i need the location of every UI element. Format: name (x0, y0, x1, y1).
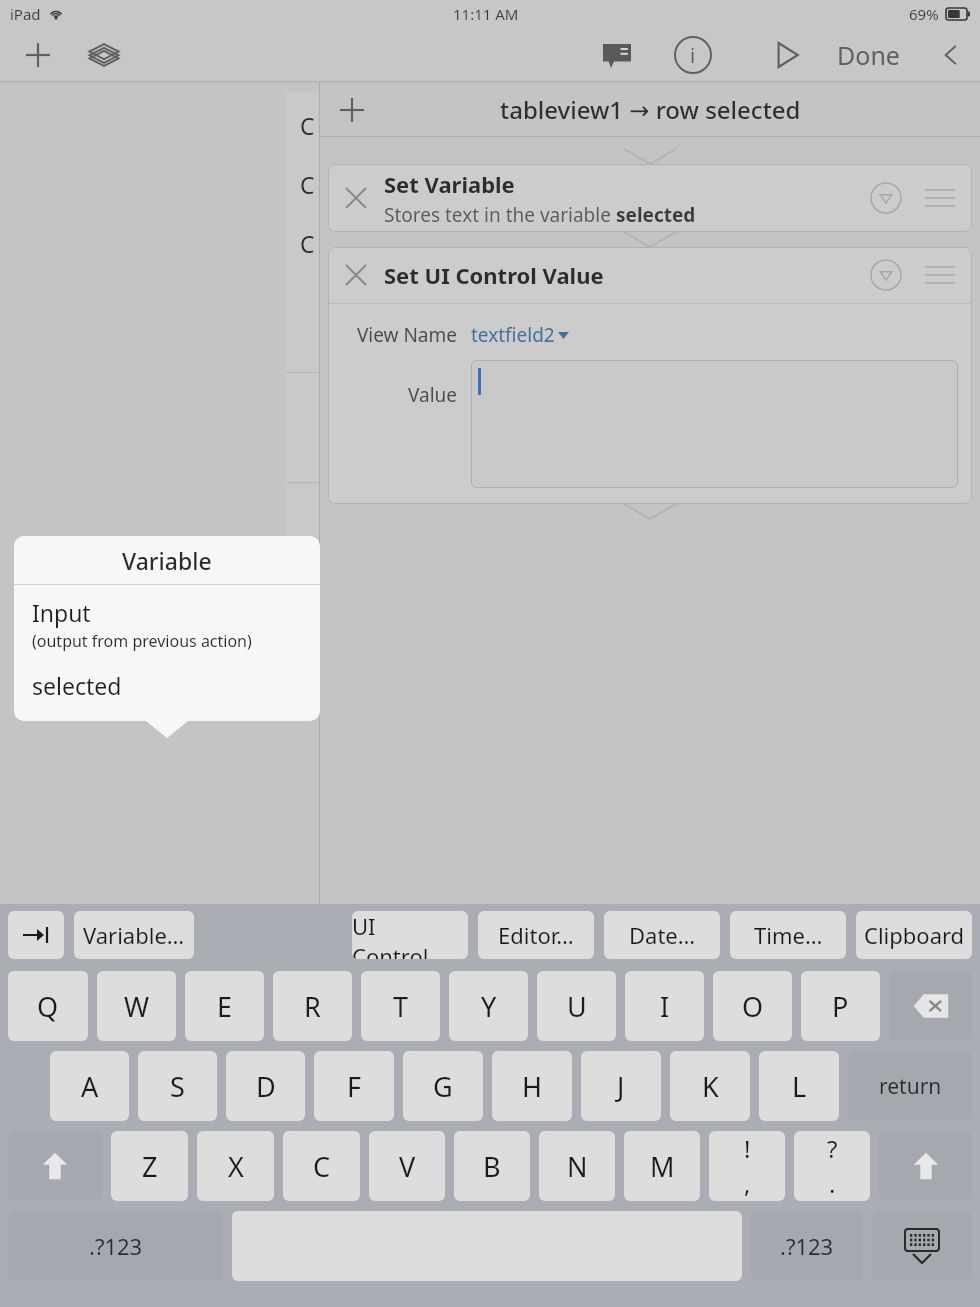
staticText: Editor… (498, 920, 574, 950)
button[interactable]: A (50, 1051, 129, 1121)
button[interactable]: Add (14, 31, 62, 79)
button[interactable]: P (801, 971, 880, 1041)
button[interactable]: ! (709, 1131, 785, 1201)
button[interactable]: G (403, 1051, 483, 1121)
staticText: O (742, 988, 764, 1025)
staticText: C (300, 169, 315, 200)
button[interactable]: L (759, 1051, 839, 1121)
button[interactable]: C (283, 1131, 360, 1201)
staticText: N (567, 1148, 588, 1185)
staticText: P (832, 988, 849, 1025)
staticText: E (217, 988, 233, 1025)
button[interactable]: UI Control… (352, 911, 468, 959)
button[interactable]: Delete action (328, 247, 384, 303)
button[interactable]: .?123 (751, 1211, 863, 1281)
staticText: I (660, 988, 670, 1025)
staticText: return (879, 1072, 942, 1101)
button[interactable]: H (492, 1051, 572, 1121)
button[interactable]: Y (449, 971, 528, 1041)
staticText: ! (744, 1132, 751, 1165)
button[interactable]: Input (14, 585, 320, 658)
button[interactable]: Reorder (914, 164, 966, 232)
button[interactable]: N (539, 1131, 615, 1201)
button[interactable]: Add action (330, 88, 374, 132)
button[interactable]: return (848, 1051, 972, 1121)
staticText: Value (342, 382, 457, 408)
button[interactable]: Editor… (478, 911, 594, 959)
button[interactable]: Delete action (328, 164, 384, 232)
staticText: Set UI Control Value (384, 260, 604, 290)
staticText: H (522, 1068, 543, 1105)
button[interactable]: Done (831, 29, 906, 81)
button[interactable]: Hide keyboard (872, 1211, 972, 1281)
staticText: . (829, 1167, 836, 1200)
staticText: selected (616, 202, 696, 228)
button[interactable]: U (537, 971, 616, 1041)
button[interactable]: Q (8, 971, 88, 1041)
button[interactable]: Time… (730, 911, 846, 959)
staticText: Variable… (83, 920, 185, 950)
button[interactable]: Run (761, 29, 813, 81)
staticText: Time… (754, 920, 823, 950)
button[interactable]: B (454, 1131, 530, 1201)
staticText: i (690, 42, 696, 69)
staticText: D (256, 1068, 276, 1105)
staticText: 11:11 AM (453, 4, 519, 24)
button[interactable]: K (670, 1051, 750, 1121)
button[interactable]: O (713, 971, 792, 1041)
staticText: textfield2 (471, 322, 555, 348)
staticText: tableview1 → row selected (500, 93, 801, 126)
button[interactable]: Reorder (914, 247, 966, 303)
button[interactable]: Date… (604, 911, 720, 959)
staticText: J (617, 1068, 625, 1105)
button[interactable]: ? (794, 1131, 870, 1201)
button[interactable]: Expand (858, 164, 914, 232)
button[interactable]: F (314, 1051, 394, 1121)
button[interactable]: Back (928, 32, 974, 78)
button[interactable]: J (581, 1051, 661, 1121)
button[interactable]: Expand (858, 247, 914, 303)
button[interactable]: Backspace (889, 971, 972, 1041)
button[interactable]: W (97, 971, 176, 1041)
staticText: S (170, 1068, 185, 1105)
staticText: F (347, 1068, 362, 1105)
staticText: A (81, 1068, 99, 1105)
button[interactable]: Shift (879, 1131, 972, 1201)
button[interactable]: Info (667, 29, 719, 81)
staticText: C (300, 228, 315, 259)
button[interactable]: V (369, 1131, 445, 1201)
button[interactable]: .?123 (8, 1211, 223, 1281)
staticText: Done (837, 38, 900, 72)
button[interactable]: Tab (8, 911, 64, 959)
staticText: Q (37, 988, 59, 1025)
staticText: .?123 (780, 1231, 834, 1261)
button[interactable]: Layers (80, 31, 128, 79)
staticText: View Name (342, 322, 457, 348)
staticText: (output from previous action) (32, 630, 252, 652)
button[interactable]: T (361, 971, 440, 1041)
button[interactable]: Console (591, 29, 643, 81)
button[interactable]: Delete action (328, 164, 972, 232)
button[interactable]: D (226, 1051, 305, 1121)
button[interactable]: Clipboard (856, 911, 972, 959)
button[interactable]: R (273, 971, 352, 1041)
button[interactable]: S (138, 1051, 217, 1121)
staticText: K (702, 1068, 719, 1105)
staticText: selected (32, 670, 122, 701)
staticText: Input (32, 597, 91, 628)
button[interactable]: I (625, 971, 704, 1041)
button[interactable]: Variable… (74, 911, 194, 959)
button[interactable]: X (197, 1131, 274, 1201)
button[interactable]: textfield2 (471, 322, 569, 348)
staticText: Z (142, 1148, 158, 1185)
button[interactable] (471, 360, 958, 488)
button[interactable]: E (185, 971, 264, 1041)
button[interactable]: selected (14, 670, 320, 721)
button[interactable]: Shift (8, 1131, 102, 1201)
button[interactable]: M (624, 1131, 700, 1201)
staticText: , (744, 1167, 751, 1200)
button[interactable]: Delete action (328, 247, 972, 303)
button[interactable]: Z (111, 1131, 188, 1201)
staticText: G (433, 1068, 453, 1105)
